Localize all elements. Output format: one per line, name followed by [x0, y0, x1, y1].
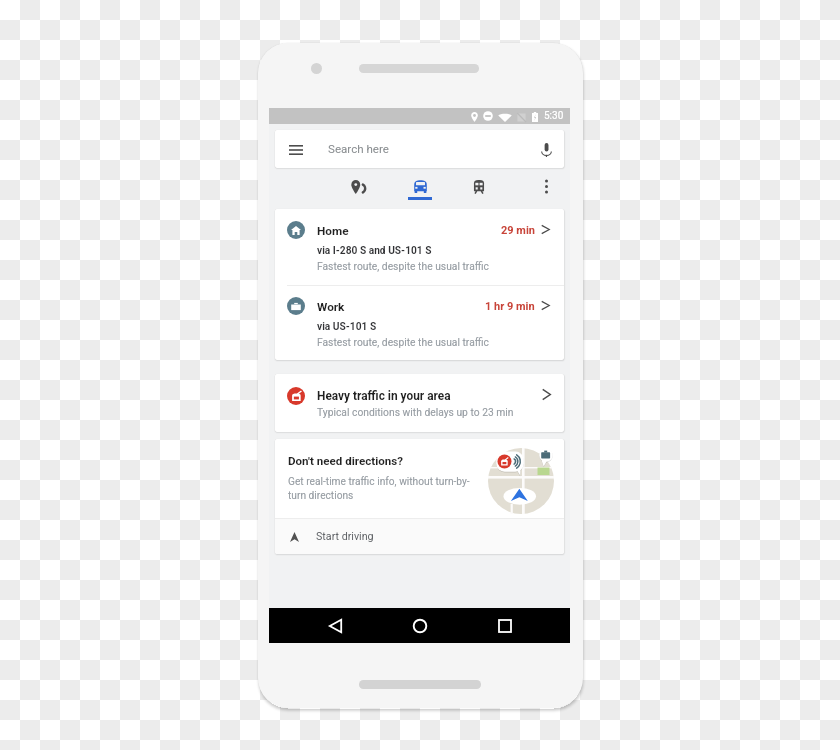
staticText: Get real-time traffic info, without turn… [288, 476, 470, 501]
staticText: Fastest route, despite the usual traffic [317, 260, 489, 272]
staticText: 1 hr 9 min [485, 300, 535, 313]
button[interactable]: Recents [485, 608, 525, 643]
staticText: Don't need directions? [288, 454, 403, 468]
other: Voice search [541, 143, 552, 157]
button[interactable]: Menu [275, 130, 564, 168]
staticText: Heavy traffic in your area [317, 389, 451, 403]
button[interactable]: Heavy traffic in your area [275, 374, 564, 432]
button[interactable]: Home [400, 608, 440, 643]
staticText: 5:30 [544, 110, 564, 122]
button[interactable]: Start driving [275, 519, 564, 554]
staticText: Home [317, 224, 349, 238]
button[interactable]: Work [275, 285, 564, 360]
other: Menu [289, 145, 303, 155]
staticText: Fastest route, despite the usual traffic [317, 336, 489, 348]
button[interactable]: More options [531, 170, 561, 202]
staticText: Work [317, 300, 345, 314]
staticText: Typical conditions with delays up to 23 … [317, 406, 514, 418]
button[interactable]: Driving [400, 170, 440, 202]
button[interactable]: Transit [459, 170, 499, 202]
staticText: via US-101 S [317, 321, 377, 333]
staticText: via I-280 S and US-101 S [317, 245, 432, 257]
staticText: Search here [328, 142, 389, 156]
button[interactable]: Explore [338, 170, 378, 202]
staticText: Start driving [316, 530, 374, 543]
staticText: 29 min [501, 224, 535, 237]
button[interactable]: Home [275, 209, 564, 284]
button[interactable]: Back [315, 608, 355, 643]
